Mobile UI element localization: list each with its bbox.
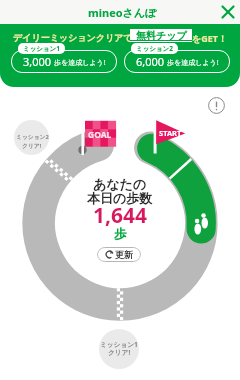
staticText: ミッション1 [100,340,138,349]
staticText: をGET！ [192,32,227,44]
staticText: デイリーミッションクリアで [13,32,133,43]
button[interactable]: Close [216,0,240,24]
staticText: 3,000 [23,54,52,69]
button[interactable] [14,120,49,155]
staticText: START [159,128,182,138]
staticText: 歩を達成しよう! [167,58,219,68]
staticText: ミッション2 [136,44,173,53]
staticText: 本日の歩数 [87,190,153,206]
staticText: GOAL [88,129,112,141]
staticText: mineoさんぽ [88,5,157,20]
staticText: クリア! [108,348,131,357]
staticText: ミッション1 [23,44,60,53]
button[interactable]: 更新 [97,247,141,262]
staticText: 無料チップ [136,29,187,42]
button[interactable]: Info [208,97,225,114]
staticText: 歩 [114,226,127,242]
staticText: あなたの [93,176,147,192]
staticText: 更新 [115,249,133,260]
staticText: 歩を達成しよう! [54,58,106,68]
button[interactable]: 3,000 [11,50,117,73]
staticText: 6,000 [136,54,165,69]
button[interactable] [99,329,139,369]
button[interactable]: 6,000 [124,50,230,73]
staticText: ミッション2 [16,133,49,141]
staticText: 1,644 [93,201,148,230]
staticText: クリア! [22,142,42,150]
